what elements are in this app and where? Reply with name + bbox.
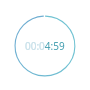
button[interactable]: 00:04:59 [25,39,65,53]
